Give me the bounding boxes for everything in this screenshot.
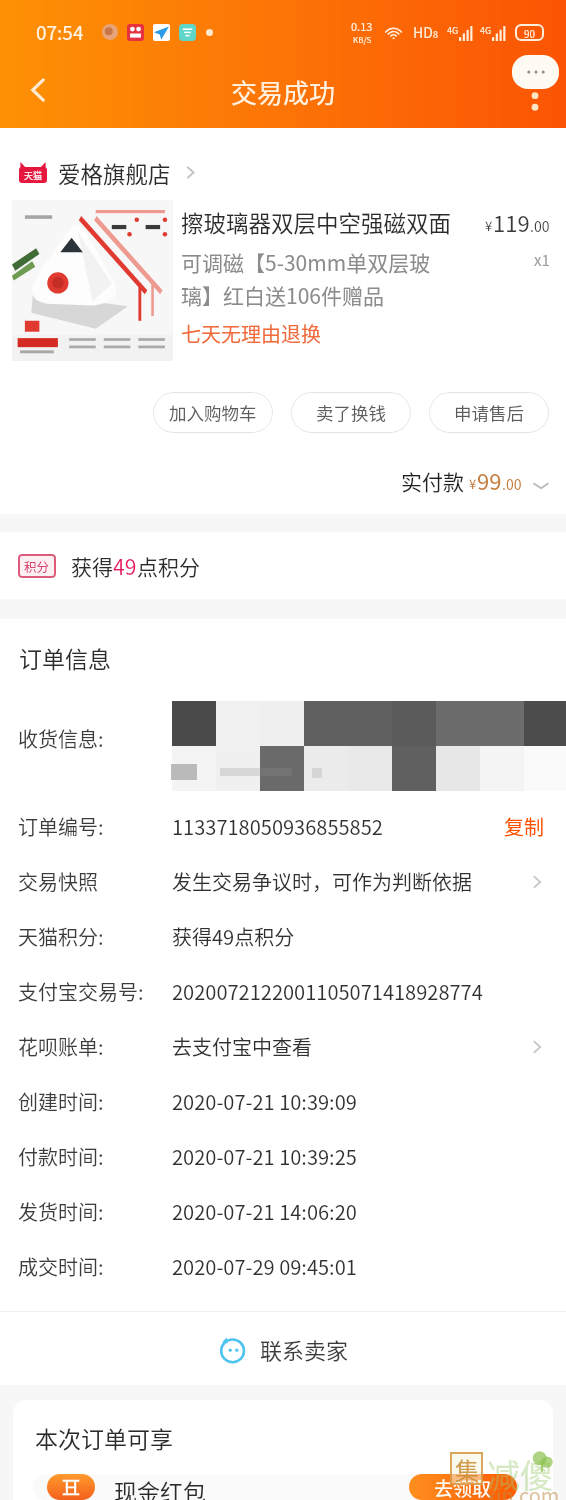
staticText: 积分: [24, 557, 50, 575]
staticText: 擦玻璃器双层中空强磁双面: [181, 206, 452, 239]
staticText: 集: [455, 1452, 479, 1485]
staticText: .00: [502, 474, 522, 494]
staticText: 天猫积分:: [18, 922, 172, 951]
staticText: 付款时间:: [18, 1142, 172, 1171]
staticText: 实付款: [401, 466, 464, 496]
staticText: 联系卖家: [260, 1333, 349, 1365]
staticText: 获得: [71, 551, 113, 581]
staticText: KB/S: [353, 34, 372, 46]
staticText: xin.com: [486, 1480, 560, 1500]
staticText: 8: [433, 28, 438, 41]
staticText: 发货时间:: [18, 1197, 172, 1226]
staticText: 2020-07-21 10:39:25: [172, 1142, 566, 1171]
staticText: 支付宝交易号:: [18, 977, 172, 1006]
staticText: 99: [477, 464, 502, 496]
button[interactable]: 天猫积分:: [0, 909, 566, 964]
staticText: 4G: [480, 24, 492, 37]
button[interactable]: 发货时间:: [0, 1184, 566, 1239]
staticText: 获得49点积分: [172, 922, 566, 951]
staticText: 90: [524, 26, 536, 40]
staticText: 成交时间:: [18, 1252, 172, 1281]
staticText: 交易成功: [231, 73, 336, 111]
staticText: 七天无理由退换: [181, 319, 321, 348]
button[interactable]: 卖了换钱: [291, 392, 411, 433]
staticText: 0.13: [351, 18, 373, 34]
button[interactable]: 去领取: [409, 1474, 517, 1500]
button[interactable]: Menu hint: [512, 55, 559, 89]
button[interactable]: More options: [528, 78, 542, 112]
button[interactable]: 申请售后: [429, 392, 549, 433]
staticText: 交易快照: [18, 867, 172, 896]
staticText: 卖了换钱: [316, 400, 386, 425]
button[interactable]: 交易快照: [0, 854, 566, 909]
button[interactable]: 成交时间:: [0, 1239, 566, 1294]
staticText: 创建时间:: [18, 1087, 172, 1116]
staticText: 可调磁【5-30mm单双层玻璃】红白送106件赠品: [181, 247, 463, 310]
button[interactable]: 天猫: [19, 157, 566, 187]
staticText: 2020-07-21 10:39:09: [172, 1087, 566, 1116]
staticText: 去领取: [434, 1474, 492, 1500]
staticText: 收货信息:: [18, 724, 104, 753]
staticText: .00: [530, 216, 550, 236]
staticText: 复制: [504, 812, 544, 841]
staticText: 订单编号:: [18, 812, 172, 841]
staticText: 07:54: [36, 18, 84, 46]
staticText: 加入购物车: [169, 400, 257, 425]
button[interactable]: 加入购物车: [153, 392, 273, 433]
staticText: 申请售后: [454, 400, 524, 425]
button[interactable]: 实付款: [0, 464, 550, 496]
staticText: 2020-07-29 09:45:01: [172, 1252, 566, 1281]
staticText: 天猫: [24, 169, 43, 182]
staticText: 本次订单可享: [35, 1421, 173, 1454]
staticText: 减傻: [487, 1450, 553, 1498]
staticText: ¥: [469, 474, 477, 493]
button[interactable]: 擦玻璃器双层中空强磁双面: [12, 200, 550, 361]
button[interactable]: 订单编号:: [0, 799, 566, 854]
button[interactable]: 现金红包: [33, 1474, 533, 1500]
staticText: ¥: [485, 216, 493, 235]
staticText: 发生交易争议时，可作为判断依据: [172, 867, 528, 896]
staticText: 2020-07-21 14:06:20: [172, 1197, 566, 1226]
staticText: 点积分: [137, 551, 200, 581]
staticText: 花呗账单:: [18, 1032, 172, 1061]
staticText: 爱格旗舰店: [58, 157, 171, 187]
staticText: 现金红包: [114, 1474, 206, 1500]
staticText: 119: [493, 206, 530, 238]
button[interactable]: 创建时间:: [0, 1074, 566, 1129]
staticText: 4G: [447, 24, 459, 37]
button[interactable]: 支付宝交易号:: [0, 964, 566, 1019]
staticText: 去支付宝中查看: [172, 1032, 528, 1061]
button[interactable]: 付款时间:: [0, 1129, 566, 1184]
staticText: 1133718050936855852: [172, 812, 504, 841]
staticText: 2020072122001105071418928774: [172, 977, 566, 1006]
button[interactable]: 积分: [18, 532, 566, 599]
button[interactable]: 花呗账单:: [0, 1019, 566, 1074]
staticText: x1: [534, 249, 550, 271]
button[interactable]: 联系卖家: [0, 1312, 566, 1385]
staticText: 订单信息: [19, 641, 111, 674]
staticText: 49: [113, 551, 137, 581]
staticText: HD: [413, 22, 433, 42]
button[interactable]: Back: [12, 64, 64, 116]
